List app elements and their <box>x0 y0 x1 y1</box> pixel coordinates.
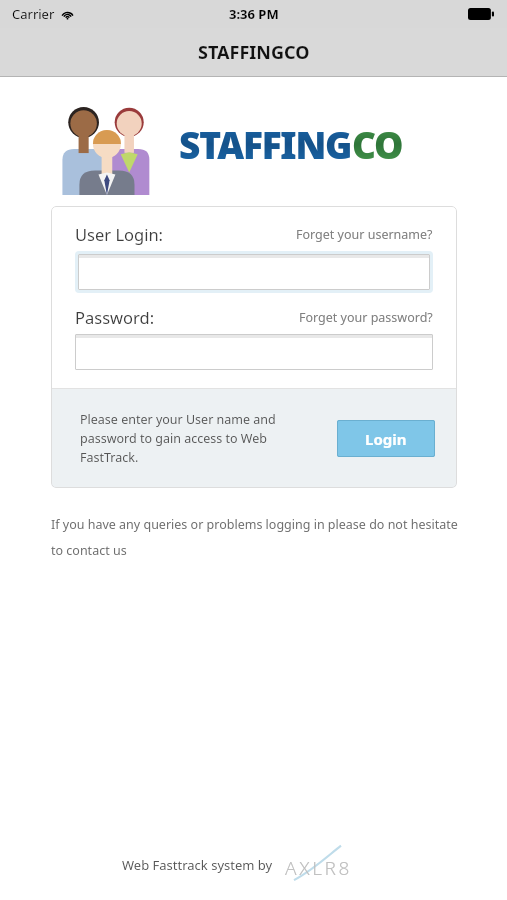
staticText: 3:36 PM <box>229 5 279 23</box>
staticText: Login <box>365 429 407 449</box>
staticText: User Login: <box>75 223 164 245</box>
button[interactable] <box>75 334 433 370</box>
staticText: STAFFINGCO <box>198 40 310 65</box>
staticText: STAFFING <box>179 119 352 169</box>
staticText: Web Fasttrack system by <box>122 856 273 874</box>
staticText: Forget your password? <box>299 309 433 326</box>
button[interactable]: Login <box>337 420 435 457</box>
staticText: Password: <box>75 306 155 328</box>
staticText: If you have any queries or problems logg… <box>51 516 462 558</box>
staticText: Carrier <box>12 5 55 23</box>
button[interactable]: Forget your password? <box>299 309 433 328</box>
staticText: CO <box>352 119 403 169</box>
button[interactable]: Forget your username? <box>296 226 433 245</box>
staticText: Forget your username? <box>296 226 433 243</box>
staticText: Please enter your User name and password… <box>80 411 321 466</box>
button[interactable] <box>78 254 430 290</box>
staticText: AXLR8 <box>285 855 352 881</box>
